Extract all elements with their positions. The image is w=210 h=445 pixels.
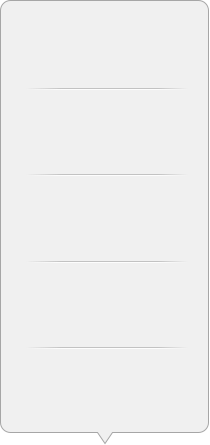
button[interactable]: Item 5 [1,343,208,427]
button[interactable]: Item 1 [1,0,208,87]
button[interactable]: Item 2 [1,87,208,172]
button[interactable]: Item 3 [1,172,208,258]
button[interactable]: Item 4 [1,258,208,343]
